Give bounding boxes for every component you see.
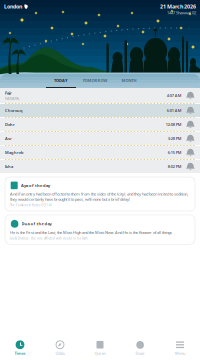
button[interactable]: Aya of the day — [5, 177, 195, 211]
staticText: The Combined Forces (33:14) — [10, 203, 52, 207]
button[interactable]: Dohr — [0, 118, 200, 131]
staticText: Joy & Distress - the one afflicted with … — [10, 237, 88, 240]
staticText: 4:07 AM — [167, 93, 182, 98]
button[interactable]: Dua of the day — [5, 215, 195, 244]
staticText: 21 March 2026 — [160, 3, 196, 10]
staticText: Dua of the day — [21, 221, 51, 226]
staticText: Dohr — [5, 122, 15, 127]
staticText: London — [4, 3, 22, 10]
staticText: Maghreb — [5, 150, 24, 155]
button[interactable]: Asr — [0, 132, 200, 145]
staticText: 04:04:06 — [5, 95, 19, 101]
staticText: Qibla — [55, 351, 64, 356]
button[interactable]: Chorouq — [0, 104, 200, 117]
button[interactable]: Isha — [0, 160, 200, 173]
button[interactable]: Quran — [80, 337, 120, 358]
staticText: TODAY — [54, 78, 68, 83]
button[interactable]: Fajr — [0, 88, 200, 103]
button[interactable]: London — [0, 0, 28, 10]
button[interactable]: Maghreb — [0, 146, 200, 159]
button[interactable]: Times — [0, 337, 40, 358]
staticText: Aya of the day — [21, 183, 50, 188]
staticText: 3:28 PM — [168, 136, 182, 141]
staticText: 12:08 PM — [166, 122, 182, 127]
button[interactable]: TODAY — [46, 74, 76, 88]
staticText: Menu — [175, 351, 185, 356]
staticText: MONTH — [121, 78, 136, 83]
staticText: 6:15 PM — [168, 150, 182, 155]
staticText: TOMORROW — [82, 78, 107, 83]
button[interactable]: Menu — [160, 337, 200, 358]
staticText: 6:01 AM — [167, 108, 182, 113]
button[interactable]: Duas — [120, 337, 160, 358]
staticText: Fajr — [5, 90, 12, 95]
staticText: Isha — [5, 164, 13, 169]
button[interactable]: Qibla — [40, 337, 80, 358]
staticText: Times — [14, 351, 25, 356]
staticText: Asr — [5, 136, 12, 141]
staticText: Duas — [135, 351, 144, 356]
staticText: 1447 Shawwal 02 — [167, 10, 196, 15]
button[interactable]: MONTH — [114, 74, 144, 88]
staticText: 8:02 PM — [168, 164, 182, 169]
staticText: Quran — [94, 351, 105, 356]
staticText: Chorouq — [5, 108, 23, 113]
staticText: And if an entry had been effected to the… — [10, 191, 188, 202]
button[interactable]: TOMORROW — [76, 74, 114, 88]
staticText: He is the First and the Last, the Most H… — [10, 230, 172, 235]
